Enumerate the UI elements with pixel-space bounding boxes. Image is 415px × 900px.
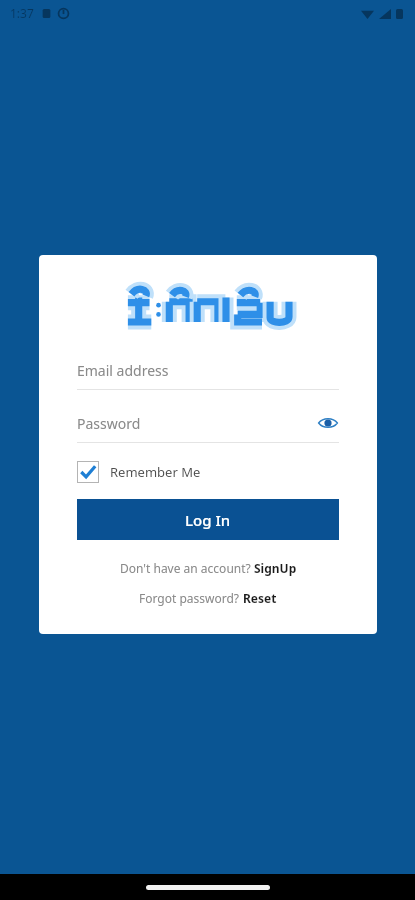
button[interactable]: Email address [77, 355, 339, 390]
staticText: Forgot password? [139, 590, 243, 606]
staticText: Reset [243, 590, 277, 606]
staticText: Don't have an account? [120, 560, 254, 576]
button[interactable]: Reset [243, 590, 277, 606]
button[interactable]: Log In [77, 499, 339, 540]
staticText: Remember Me [110, 463, 201, 481]
staticText: Email address [77, 361, 169, 380]
staticText: 1:37 [10, 5, 34, 21]
button[interactable]: Password [77, 408, 339, 443]
staticText: Log In [185, 510, 231, 530]
button[interactable]: Remember Me [77, 461, 339, 483]
button[interactable]: Show password [317, 412, 339, 434]
staticText: Password [77, 414, 141, 433]
staticText: SignUp [254, 560, 297, 576]
button[interactable]: SignUp [254, 560, 297, 576]
